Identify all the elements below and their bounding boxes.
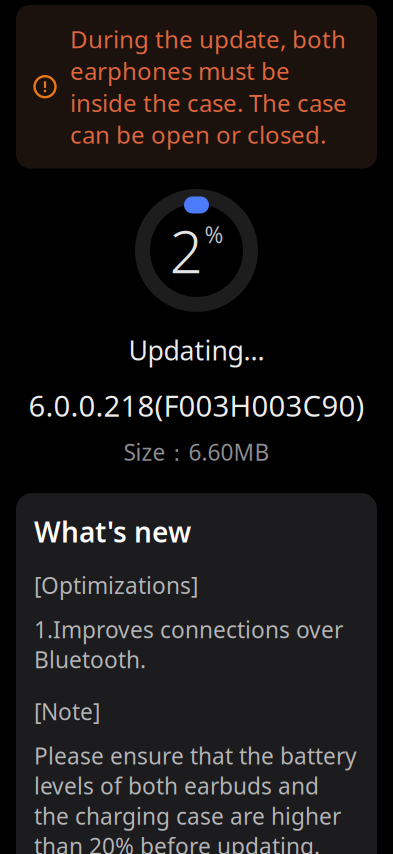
staticText: 6.0.0.218(F003H003C90): [28, 386, 364, 425]
staticText: What's new: [34, 513, 191, 550]
staticText: Please ensure that the battery levels of…: [34, 741, 357, 854]
staticText: %: [204, 219, 223, 250]
staticText: [Optimizations]: [34, 570, 198, 600]
staticText: Size：6.60MB: [123, 437, 269, 467]
staticText: 1.Improves connections over Bluetooth.: [34, 614, 343, 674]
staticText: Updating...: [128, 332, 264, 368]
staticText: During the update, both earphones must b…: [70, 23, 347, 150]
staticText: 2: [169, 211, 202, 289]
staticText: [Note]: [34, 696, 100, 727]
